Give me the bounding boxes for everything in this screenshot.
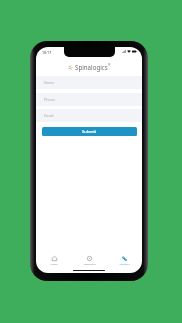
staticText: Treatment [83, 262, 96, 265]
button[interactable]: Treatment [72, 256, 107, 265]
staticText: Submit [82, 129, 97, 135]
other: Home [52, 256, 57, 261]
other: Treatment [87, 256, 92, 261]
other: Contacts [122, 256, 127, 261]
staticText: Name [44, 80, 55, 85]
staticText: Contacts [119, 262, 130, 265]
button[interactable]: Contacts [107, 256, 142, 265]
staticText: Email [44, 113, 54, 118]
staticText: Spinalogics [75, 63, 108, 71]
button[interactable]: Email [36, 109, 142, 122]
button[interactable]: Name [36, 76, 142, 89]
button[interactable]: Submit [42, 127, 137, 136]
staticText: Phone [44, 97, 56, 102]
button[interactable]: Phone [36, 93, 142, 106]
button[interactable]: Home [36, 256, 72, 265]
staticText: 10:17 [42, 50, 52, 55]
staticText: ® [108, 63, 111, 67]
staticText: Home [50, 262, 58, 265]
